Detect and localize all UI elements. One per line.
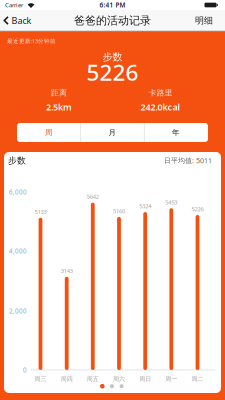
staticText: 距离 — [51, 88, 67, 98]
staticText: 0 — [23, 366, 27, 374]
staticText: 5133 — [34, 208, 46, 216]
staticText: 周五 — [87, 375, 99, 383]
staticText: 周二 — [191, 375, 203, 383]
staticText: 卡路里 — [148, 88, 172, 98]
staticText: 年 — [172, 128, 180, 137]
staticText: 步数 — [102, 51, 122, 63]
staticText: 242.0kcal — [140, 101, 180, 113]
staticText: 5160 — [113, 207, 125, 215]
staticText: 6:41 PM — [99, 1, 125, 9]
staticText: 周日 — [139, 375, 151, 383]
staticText: 周一 — [165, 375, 177, 383]
staticText: 5324 — [139, 202, 151, 210]
button[interactable]: 月 — [81, 123, 144, 142]
staticText: 日平均值: 5011 — [164, 156, 212, 165]
staticText: 2.5km — [46, 101, 72, 113]
staticText: 周四 — [61, 375, 73, 383]
button[interactable]: Back — [3, 10, 31, 31]
staticText: Back — [11, 14, 31, 27]
staticText: 2,000 — [9, 307, 27, 315]
staticText: 5642 — [87, 193, 99, 200]
staticText: 周三 — [34, 375, 46, 383]
staticText: 周六 — [113, 375, 125, 383]
staticText: 5453 — [165, 198, 177, 206]
staticText: 爸爸的活动记录 — [74, 14, 151, 27]
staticText: 5226 — [86, 57, 138, 87]
button[interactable]: 明细 — [187, 10, 221, 31]
staticText: 月 — [108, 128, 116, 137]
staticText: 5226 — [191, 205, 203, 213]
staticText: 步数 — [8, 155, 26, 166]
button[interactable]: 年 — [144, 123, 207, 142]
staticText: 3143 — [61, 267, 73, 275]
button[interactable]: 周 — [17, 123, 80, 142]
staticText: 明细 — [195, 15, 213, 26]
staticText: 6,000 — [9, 188, 27, 196]
staticText: 最近更新:13分钟前 — [7, 37, 56, 45]
staticText: 4,000 — [9, 247, 27, 255]
staticText: Carrier — [5, 1, 23, 9]
staticText: 周 — [45, 128, 53, 137]
